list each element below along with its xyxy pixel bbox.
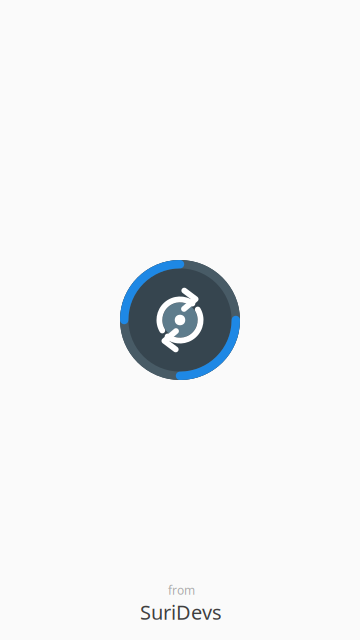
staticText: SuriDevs bbox=[140, 599, 222, 625]
staticText: from bbox=[168, 582, 195, 598]
